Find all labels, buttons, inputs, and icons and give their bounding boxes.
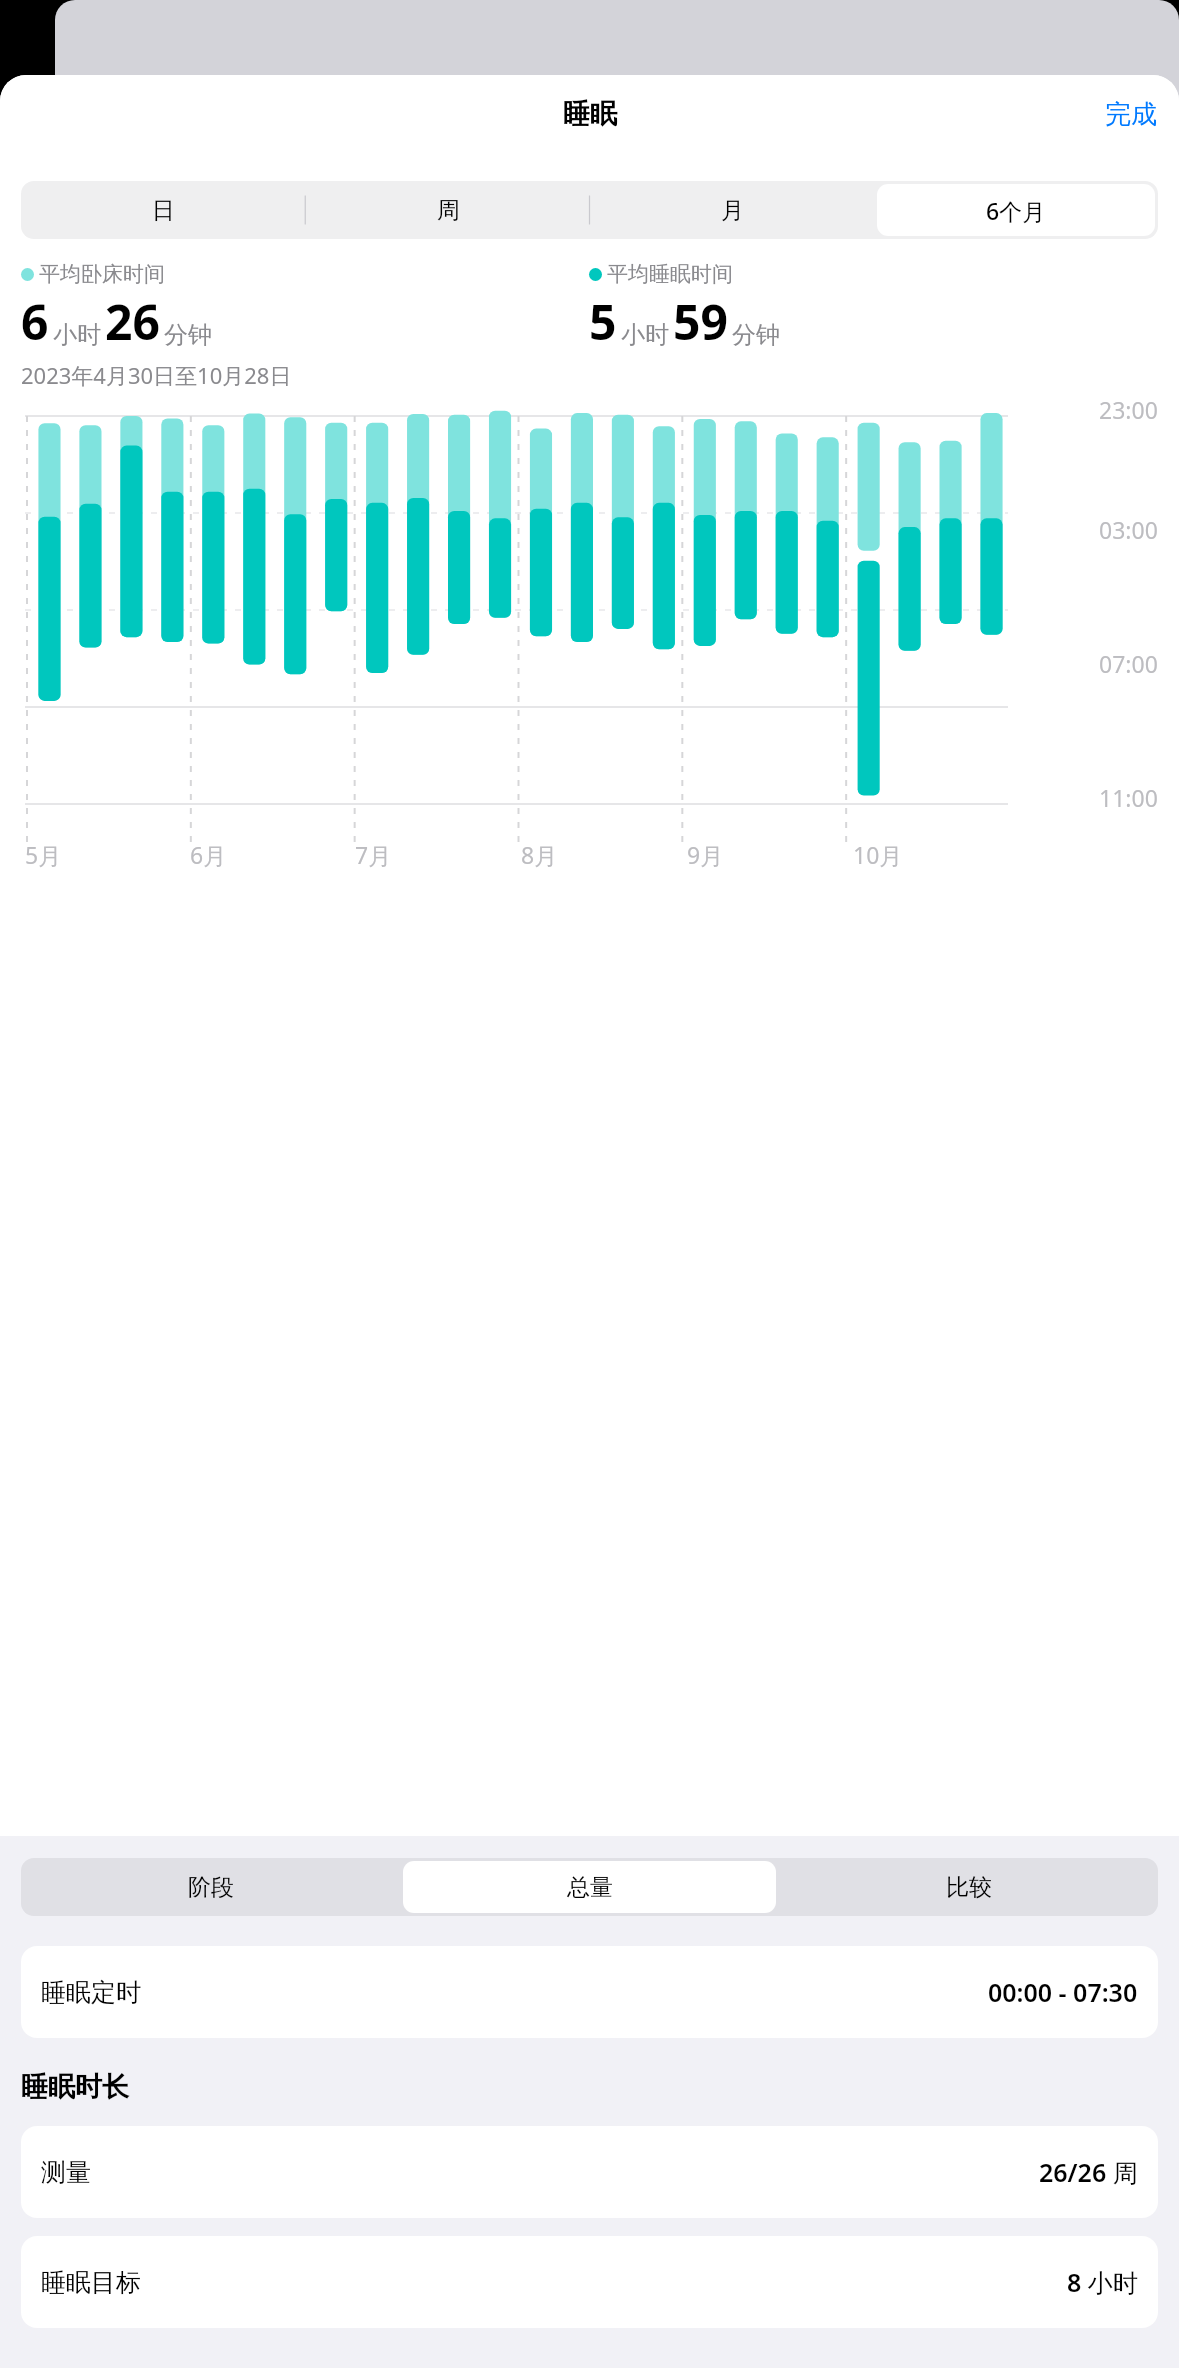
staticText: 6月: [190, 839, 227, 870]
staticText: 8 小时: [1067, 2265, 1138, 2299]
staticText: 03:00: [1099, 514, 1158, 545]
staticText: 平均卧床时间: [39, 261, 165, 287]
staticText: 完成: [1105, 98, 1157, 131]
staticText: 分钟: [164, 320, 212, 350]
staticText: 26/26 周: [1039, 2155, 1138, 2189]
button[interactable]: 比较: [782, 1861, 1155, 1913]
staticText: 睡眠定时: [41, 1977, 141, 2008]
staticText: 59: [673, 289, 728, 354]
staticText: 月: [721, 196, 744, 225]
staticText: 睡眠: [563, 97, 617, 131]
button[interactable]: 测量: [21, 2126, 1158, 2218]
staticText: 8月: [521, 839, 558, 870]
button[interactable]: 阶段: [24, 1861, 397, 1913]
staticText: 分钟: [732, 320, 780, 350]
staticText: 阶段: [188, 1873, 234, 1902]
staticText: 11:00: [1099, 782, 1158, 813]
staticText: 23:00: [1099, 394, 1158, 425]
button[interactable]: 周: [309, 184, 587, 236]
staticText: 小时: [621, 320, 669, 350]
staticText: 5月: [25, 839, 62, 870]
staticText: 6: [21, 289, 49, 354]
button[interactable]: 睡眠定时: [21, 1946, 1158, 2038]
button[interactable]: 6个月: [877, 184, 1155, 236]
staticText: 总量: [567, 1873, 613, 1902]
staticText: 日: [152, 196, 175, 225]
staticText: 睡眠目标: [41, 2267, 141, 2298]
staticText: 9月: [687, 839, 724, 870]
button[interactable]: 日: [24, 184, 303, 236]
button[interactable]: 睡眠目标: [21, 2236, 1158, 2328]
button[interactable]: 总量: [403, 1861, 776, 1913]
staticText: 周: [437, 196, 460, 225]
staticText: 小时: [53, 320, 101, 350]
staticText: 00:00 - 07:30: [988, 1975, 1138, 2009]
button[interactable]: 完成: [1095, 92, 1167, 137]
staticText: 睡眠时长: [21, 2070, 129, 2104]
staticText: 平均睡眠时间: [607, 261, 733, 287]
staticText: 2023年4月30日至10月28日: [21, 360, 292, 390]
staticText: 6个月: [986, 195, 1046, 226]
staticText: 07:00: [1099, 648, 1158, 679]
staticText: 26: [105, 289, 160, 354]
staticText: 5: [589, 289, 617, 354]
staticText: 10月: [853, 839, 903, 870]
staticText: 7月: [355, 839, 392, 870]
staticText: 测量: [41, 2157, 91, 2188]
staticText: 比较: [946, 1873, 992, 1902]
button[interactable]: 月: [593, 184, 871, 236]
